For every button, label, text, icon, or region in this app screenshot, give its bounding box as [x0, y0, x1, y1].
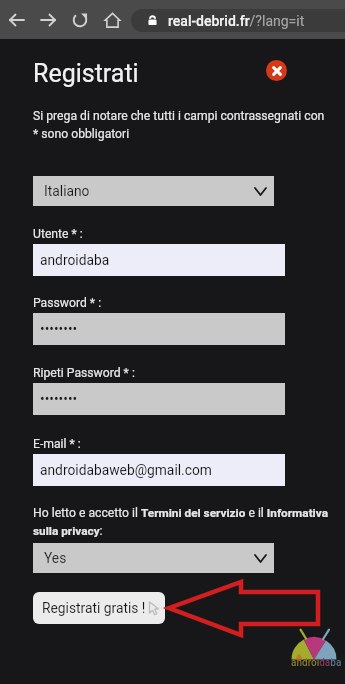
button[interactable]: Back — [5, 8, 29, 32]
staticText: real-debrid.fr/?lang=it — [168, 13, 305, 29]
staticText: Utente * : — [33, 227, 83, 241]
button[interactable]: androidabaweb@gmail.com — [33, 454, 285, 486]
staticText: Ripeti Password * : — [33, 366, 135, 380]
staticText: Registrati — [33, 59, 139, 88]
staticText: androidabaweb@gmail.com — [40, 462, 212, 478]
button[interactable]: Registrati gratis ! — [33, 592, 165, 624]
staticText: Yes — [44, 550, 67, 566]
staticText: •••••••• — [40, 391, 78, 407]
button[interactable]: Close — [266, 60, 287, 81]
staticText: E-mail * : — [33, 437, 81, 451]
button[interactable]: Reload — [68, 8, 92, 32]
staticText: •••••••• — [40, 321, 78, 337]
button[interactable]: •••••••• — [33, 383, 285, 415]
button[interactable]: Forward — [36, 8, 60, 32]
staticText: Italiano — [44, 183, 90, 199]
button[interactable]: •••••••• — [33, 313, 285, 345]
staticText: Password * : — [33, 296, 102, 310]
button[interactable]: Yes — [33, 543, 274, 573]
staticText: Ho letto e accetto il Termini del serviz… — [33, 506, 328, 538]
button[interactable]: Italiano — [33, 176, 274, 206]
staticText: Si prega di notare che tutti i campi con… — [33, 109, 325, 141]
button[interactable]: real-debrid.fr/?lang=it — [131, 9, 345, 32]
button[interactable]: androidaba — [33, 244, 285, 276]
staticText: androidaba — [40, 252, 110, 268]
staticText: androidaba — [291, 657, 342, 669]
staticText: Registrati gratis ! — [42, 600, 146, 616]
button[interactable]: Home — [100, 8, 125, 33]
